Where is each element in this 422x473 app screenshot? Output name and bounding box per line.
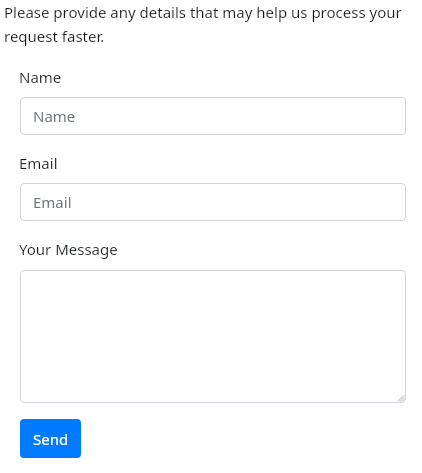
staticText: Your Message [19, 239, 118, 259]
staticText: Name [19, 67, 62, 87]
button[interactable]: Your Message [20, 270, 406, 403]
staticText: Email [19, 153, 58, 173]
button[interactable]: Name [20, 97, 406, 135]
button[interactable]: Email [20, 183, 406, 221]
staticText: Email [33, 192, 72, 212]
button[interactable]: Send [20, 419, 81, 458]
staticText: Send [33, 429, 69, 449]
staticText: Name [33, 106, 76, 126]
staticText: Please provide any details that may help… [4, 2, 408, 47]
